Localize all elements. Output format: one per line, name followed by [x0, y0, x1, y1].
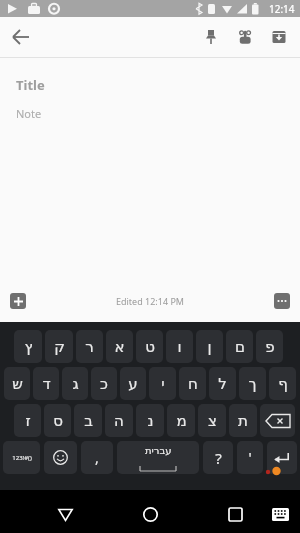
staticText: ף [278, 375, 288, 392]
button[interactable] [137, 501, 163, 527]
button[interactable]: ש [4, 367, 30, 400]
staticText: ל [218, 375, 227, 392]
button[interactable]: י [149, 367, 176, 400]
staticText: י [161, 375, 165, 392]
button[interactable] [44, 441, 77, 474]
button[interactable]: ק [45, 330, 73, 363]
button[interactable]: ? [203, 441, 233, 474]
button[interactable]: ם [226, 330, 253, 363]
button[interactable]: ץ [14, 330, 42, 363]
staticText: Note [16, 106, 42, 121]
button[interactable]: ט [136, 330, 163, 363]
button[interactable] [198, 24, 224, 50]
button[interactable]: ד [33, 367, 59, 400]
staticText: ר [85, 338, 94, 355]
button[interactable]: צ [198, 404, 226, 437]
staticText: ן [207, 338, 212, 355]
button[interactable]: ג [62, 367, 88, 400]
button[interactable]: נ [136, 404, 164, 437]
button[interactable]: ז [14, 404, 41, 437]
staticText: ת [238, 412, 248, 429]
button[interactable]: ו [166, 330, 193, 363]
button[interactable]: ן [196, 330, 223, 363]
staticText: 12:14 [269, 2, 295, 16]
staticText: ק [54, 338, 65, 355]
staticText: ז [25, 412, 31, 429]
button[interactable] [267, 441, 297, 474]
button[interactable]: ה [105, 404, 133, 437]
staticText: נ [147, 412, 154, 429]
staticText: 123!#() [12, 454, 32, 462]
staticText: ס [53, 412, 63, 429]
staticText: ט [145, 338, 155, 355]
button[interactable]: ע [120, 367, 146, 400]
button[interactable]: כ [91, 367, 117, 400]
button[interactable]: ת [229, 404, 257, 437]
button[interactable]: ר [76, 330, 103, 363]
staticText: פ [265, 338, 275, 355]
staticText: ם [235, 338, 245, 355]
staticText: Edited 12:14 PM [116, 295, 185, 307]
button[interactable] [222, 501, 248, 527]
staticText: Title [16, 76, 45, 94]
staticText: ך [248, 375, 257, 392]
button[interactable]: ב [74, 404, 102, 437]
staticText: א [114, 338, 125, 355]
staticText: מ [176, 412, 187, 429]
button[interactable]: ' [237, 441, 263, 474]
staticText: ' [248, 448, 252, 467]
button[interactable]: ח [179, 367, 206, 400]
button[interactable]: מ [167, 404, 195, 437]
button[interactable]: עברית [117, 441, 199, 474]
button[interactable]: א [106, 330, 133, 363]
button[interactable] [52, 501, 78, 527]
staticText: ג [72, 375, 79, 392]
staticText: ש [12, 375, 23, 392]
button[interactable]: פ [256, 330, 283, 363]
button[interactable]: ף [269, 367, 296, 400]
staticText: ע [128, 375, 138, 392]
button[interactable] [268, 502, 292, 526]
staticText: ץ [24, 338, 33, 355]
button[interactable] [260, 404, 295, 437]
button[interactable] [232, 24, 258, 50]
staticText: כ [100, 375, 108, 392]
button[interactable] [274, 293, 290, 309]
staticText: ב [84, 412, 93, 429]
button[interactable] [10, 293, 26, 309]
button[interactable]: ך [239, 367, 266, 400]
staticText: , [95, 448, 99, 467]
staticText: ו [177, 338, 182, 355]
button[interactable] [8, 24, 34, 50]
button[interactable] [266, 24, 292, 50]
staticText: צ [208, 412, 217, 429]
staticText: ד [42, 375, 51, 392]
staticText: עברית [145, 445, 172, 457]
staticText: ח [188, 375, 198, 392]
button[interactable]: ס [44, 404, 71, 437]
button[interactable]: 123!#() [3, 441, 40, 474]
button[interactable]: , [81, 441, 113, 474]
staticText: ה [114, 412, 124, 429]
staticText: ? [215, 448, 222, 468]
button[interactable]: ל [209, 367, 236, 400]
